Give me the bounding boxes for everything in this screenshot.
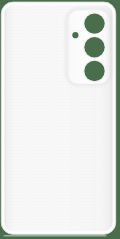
button[interactable]: Clear phone case product photo	[0, 0, 120, 239]
